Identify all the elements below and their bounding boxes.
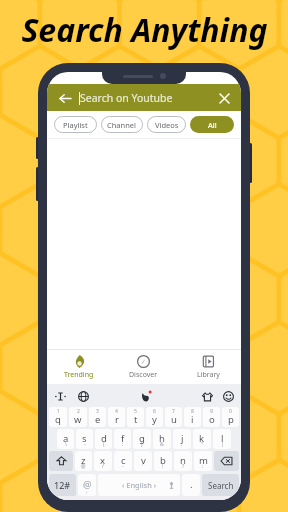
button[interactable]: 7	[165, 407, 182, 427]
staticText: 0	[229, 408, 232, 415]
staticText: x	[100, 454, 106, 467]
button[interactable]: @	[75, 451, 92, 471]
staticText: k	[199, 432, 205, 445]
button[interactable]: Channel	[101, 116, 143, 133]
staticText: 7	[172, 408, 175, 415]
button[interactable]: -	[76, 429, 93, 449]
staticText: Search Anything	[21, 8, 268, 52]
staticText: ‹ English ›	[122, 480, 157, 490]
staticText: All	[208, 120, 217, 130]
button[interactable]: 8	[184, 407, 201, 427]
button[interactable]: "	[193, 429, 211, 449]
button[interactable]: /	[94, 451, 112, 471]
staticText: :	[122, 441, 124, 448]
button[interactable]: 9	[203, 407, 220, 427]
staticText: m	[199, 454, 208, 467]
staticText: '	[142, 463, 144, 470]
staticText: g	[139, 432, 145, 445]
button[interactable]: ?	[174, 451, 192, 471]
button[interactable]: Back	[55, 88, 75, 108]
staticText: .	[190, 478, 193, 491]
staticText: 12#	[54, 479, 71, 491]
staticText: 8	[191, 408, 194, 415]
button[interactable]: :	[114, 429, 131, 449]
staticText: |	[221, 441, 224, 448]
button[interactable]: shirt	[200, 389, 214, 403]
staticText: e	[95, 413, 101, 426]
button[interactable]: 1	[49, 407, 67, 427]
button[interactable]: :	[194, 451, 212, 471]
button[interactable]: Search	[202, 474, 239, 496]
button[interactable]: Backspace	[214, 451, 239, 471]
button[interactable]: 2	[69, 407, 87, 427]
staticText: i	[191, 413, 194, 426]
button[interactable]: ,	[78, 474, 96, 496]
staticText: u	[171, 413, 177, 426]
staticText: w	[74, 413, 82, 426]
button[interactable]: Space	[98, 474, 180, 496]
staticText: Playlist	[63, 120, 88, 130]
staticText: Discover	[129, 370, 158, 380]
button[interactable]: All	[190, 116, 234, 133]
button[interactable]: &	[153, 429, 171, 449]
button[interactable]: .	[182, 474, 200, 496]
staticText: 1	[57, 408, 60, 415]
staticText: ,	[86, 488, 88, 495]
button[interactable]: 0	[222, 407, 239, 427]
button[interactable]: \	[57, 429, 74, 449]
button[interactable]: !	[154, 451, 172, 471]
button[interactable]: 3	[89, 407, 106, 427]
button[interactable]: '	[134, 451, 152, 471]
staticText: y	[152, 413, 157, 426]
button[interactable]: 4	[108, 407, 125, 427]
button[interactable]: (	[95, 429, 112, 449]
staticText: f	[121, 432, 125, 445]
staticText: :	[202, 463, 204, 470]
staticText: b	[160, 454, 166, 467]
button[interactable]: |	[213, 429, 231, 449]
button[interactable]: 12#	[49, 474, 76, 496]
staticText: 2	[77, 408, 80, 415]
staticText: -	[84, 441, 86, 448]
staticText: s	[82, 432, 87, 445]
staticText: 9	[210, 408, 213, 415]
staticText: @	[83, 478, 92, 491]
button[interactable]: Shift	[49, 451, 73, 471]
staticText: 3	[96, 408, 99, 415]
staticText: /	[102, 463, 104, 470]
button[interactable]: hand	[138, 389, 152, 403]
staticText: )	[141, 441, 143, 448]
button[interactable]: Library	[176, 350, 241, 384]
staticText: 5	[134, 408, 137, 415]
staticText: z	[81, 454, 86, 467]
button[interactable]: 5	[127, 407, 144, 427]
staticText: Trending	[64, 370, 94, 380]
button[interactable]: Discover	[111, 350, 176, 384]
button[interactable]: ;	[173, 429, 191, 449]
staticText: Library	[197, 370, 220, 380]
button[interactable]: globe	[76, 389, 90, 403]
staticText: n	[180, 454, 186, 467]
staticText: p	[228, 413, 234, 426]
staticText: ;	[181, 441, 183, 448]
button[interactable]: Playlist	[54, 116, 97, 133]
staticText: -	[122, 463, 124, 470]
button[interactable]: Videos	[147, 116, 186, 133]
button[interactable]: emoji	[221, 389, 235, 403]
staticText: c	[121, 454, 126, 467]
button[interactable]: )	[133, 429, 151, 449]
staticText: ?	[182, 463, 185, 470]
staticText: o	[209, 413, 215, 426]
staticText: "	[201, 441, 204, 448]
button[interactable]: Trending	[47, 350, 111, 384]
button[interactable]: cursor	[53, 389, 67, 403]
staticText: a	[63, 432, 69, 445]
staticText: l	[221, 432, 224, 445]
button[interactable]: Close	[215, 89, 233, 107]
button[interactable]: 6	[146, 407, 163, 427]
staticText: &	[160, 441, 164, 448]
staticText: Channel	[107, 120, 137, 130]
staticText: d	[101, 432, 107, 445]
staticText: Search	[208, 480, 234, 491]
button[interactable]: -	[114, 451, 132, 471]
